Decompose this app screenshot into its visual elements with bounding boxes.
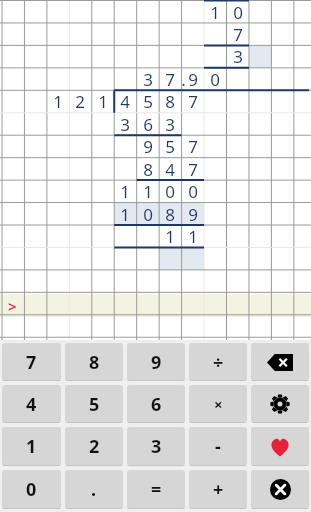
- staticText: 7: [165, 68, 175, 90]
- staticText: 1: [165, 225, 175, 247]
- staticText: 7: [26, 350, 37, 375]
- staticText: 2: [89, 434, 100, 459]
- button[interactable]: ×: [189, 385, 247, 423]
- staticText: 9: [151, 350, 162, 375]
- staticText: 1: [98, 90, 108, 112]
- staticText: 3: [143, 68, 153, 90]
- staticText: 1: [188, 225, 198, 247]
- button[interactable]: 8: [65, 343, 123, 381]
- button[interactable]: 6: [127, 385, 185, 423]
- staticText: 7: [188, 135, 198, 157]
- staticText: 5: [89, 392, 100, 417]
- button[interactable]: ÷: [189, 343, 247, 381]
- button[interactable]: .: [65, 470, 123, 509]
- staticText: 1: [26, 434, 37, 459]
- button[interactable]: Favorite: [251, 427, 309, 466]
- staticText: ×: [214, 394, 223, 414]
- button[interactable]: 0: [2, 470, 61, 509]
- button[interactable]: 5: [65, 385, 123, 423]
- button[interactable]: Backspace: [251, 343, 309, 381]
- staticText: 1: [143, 180, 153, 202]
- staticText: 4: [120, 90, 130, 112]
- button[interactable]: 7: [2, 343, 61, 381]
- button[interactable]: +: [189, 470, 247, 509]
- staticText: 0: [143, 203, 153, 225]
- staticText: >: [8, 296, 17, 315]
- staticText: 1: [210, 1, 220, 23]
- staticText: 3: [233, 45, 243, 67]
- staticText: 3: [151, 434, 162, 459]
- staticText: 7: [188, 158, 198, 180]
- button[interactable]: 4: [2, 385, 61, 423]
- button[interactable]: 3: [127, 427, 185, 466]
- staticText: 8: [165, 90, 175, 112]
- staticText: .: [181, 68, 186, 90]
- staticText: 8: [89, 350, 100, 375]
- staticText: ÷: [213, 350, 224, 375]
- staticText: -: [215, 434, 221, 459]
- staticText: 5: [143, 90, 153, 112]
- staticText: 4: [26, 392, 37, 417]
- staticText: 8: [165, 203, 175, 225]
- staticText: .: [91, 477, 97, 502]
- staticText: 9: [143, 135, 153, 157]
- staticText: 1: [120, 203, 130, 225]
- staticText: 9: [188, 68, 198, 90]
- button[interactable]: 9: [127, 343, 185, 381]
- button[interactable]: Clear: [251, 470, 309, 509]
- staticText: 0: [210, 68, 220, 90]
- staticText: 1: [120, 180, 130, 202]
- button[interactable]: 2: [65, 427, 123, 466]
- staticText: 0: [233, 1, 243, 23]
- button[interactable]: -: [189, 427, 247, 466]
- button[interactable]: 1: [2, 427, 61, 466]
- staticText: 5: [165, 135, 175, 157]
- staticText: =: [151, 477, 162, 502]
- staticText: 9: [188, 203, 198, 225]
- staticText: 0: [188, 180, 198, 202]
- staticText: 8: [143, 158, 153, 180]
- staticText: 0: [165, 180, 175, 202]
- staticText: +: [213, 477, 224, 502]
- button[interactable]: =: [127, 470, 185, 509]
- staticText: 3: [165, 113, 175, 135]
- button[interactable]: >: [3, 296, 21, 315]
- staticText: 6: [143, 113, 153, 135]
- staticText: 7: [233, 23, 243, 45]
- staticText: 7: [188, 90, 198, 112]
- staticText: 6: [151, 392, 162, 417]
- staticText: 4: [165, 158, 175, 180]
- staticText: 0: [26, 477, 37, 502]
- staticText: 1: [53, 90, 63, 112]
- button[interactable]: Settings: [251, 385, 309, 423]
- staticText: 3: [120, 113, 130, 135]
- staticText: 2: [75, 90, 85, 112]
